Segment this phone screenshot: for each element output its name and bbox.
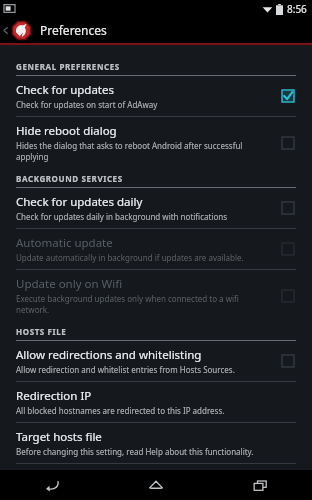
button[interactable]: Unchecked (278, 351, 298, 371)
staticText: Hide reboot dialog (16, 123, 117, 139)
button[interactable]: Automatic update (0, 229, 312, 269)
staticText: Preferences (40, 22, 107, 38)
staticText: GENERAL PREFERENCES (16, 61, 120, 72)
staticText: Allow redirections and whitelisting (16, 347, 202, 363)
staticText: Update automatically in background if up… (16, 252, 244, 263)
button[interactable]: Unchecked (278, 133, 298, 153)
button[interactable]: Back (0, 470, 104, 500)
button[interactable]: Up, Preferences (0, 17, 312, 43)
button[interactable]: Unchecked (278, 286, 298, 306)
staticText: Check for updates on start of AdAway (16, 99, 158, 110)
staticText: Execute background updates only when con… (16, 293, 270, 315)
staticText: Check for updates daily (16, 194, 143, 210)
staticText: Automatic update (16, 235, 113, 251)
button[interactable]: Recent apps (208, 470, 312, 500)
button[interactable]: Allow redirections and whitelisting (0, 341, 312, 381)
button[interactable]: Unchecked (278, 239, 298, 259)
staticText: Hides the dialog that asks to reboot And… (16, 140, 270, 162)
staticText: 8:56 (287, 2, 307, 16)
staticText: Update only on Wifi (16, 276, 123, 292)
staticText: Allow redirection and whitelist entries … (16, 364, 235, 375)
staticText: Target hosts file (16, 429, 102, 445)
button[interactable]: Home (104, 470, 208, 500)
button[interactable]: Check for updates (0, 76, 312, 116)
button[interactable]: Update only on Wifi (0, 270, 312, 321)
staticText: Redirection IP (16, 388, 92, 404)
button[interactable]: Unchecked (278, 198, 298, 218)
staticText: Before changing this setting, read Help … (16, 446, 254, 457)
button[interactable]: Target hosts file (0, 423, 312, 463)
staticText: All blocked hostnames are redirected to … (16, 405, 225, 416)
staticText: BACKGROUND SERVICES (16, 173, 123, 184)
staticText: Check for updates (16, 82, 115, 98)
button[interactable]: Check for updates daily (0, 188, 312, 228)
staticText: Check for updates daily in background wi… (16, 211, 228, 222)
button[interactable]: Checked (278, 86, 298, 106)
button[interactable]: Hide reboot dialog (0, 117, 312, 168)
staticText: HOSTS FILE (16, 326, 67, 337)
button[interactable]: Redirection IP (0, 382, 312, 422)
